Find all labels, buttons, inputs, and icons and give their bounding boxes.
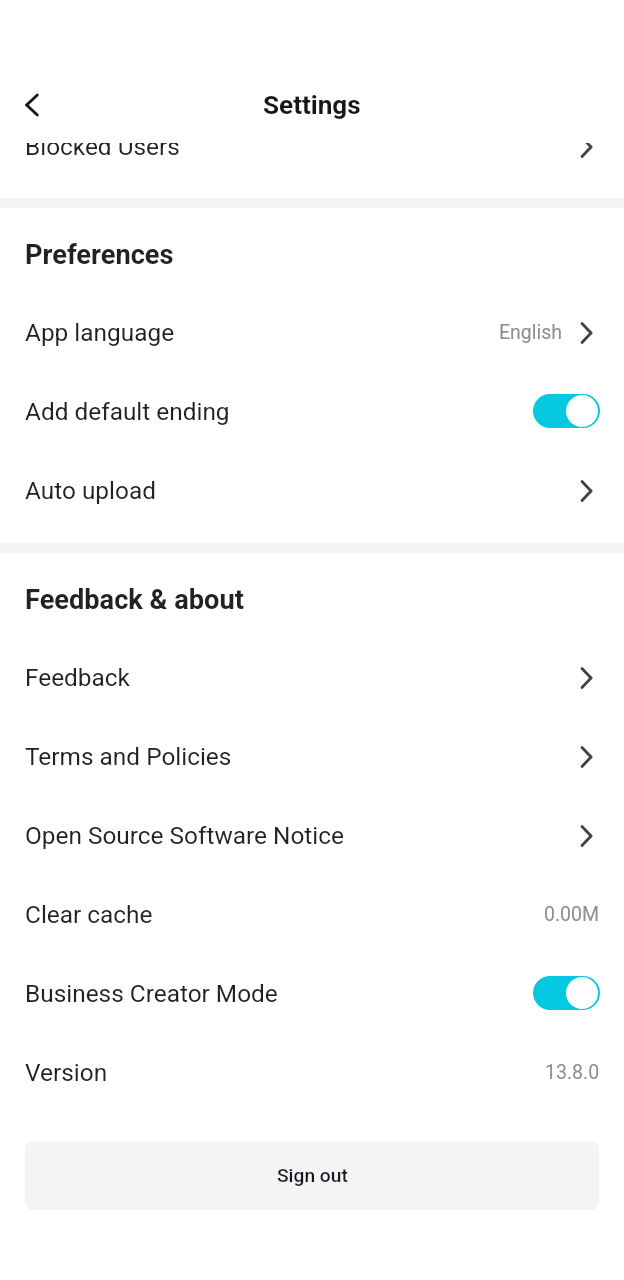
staticText: Settings [263,90,361,121]
button[interactable]: Toggle Add default ending [533,394,600,428]
staticText: Feedback [25,663,130,692]
button[interactable]: Auto upload [0,451,624,530]
staticText: Preferences [25,239,174,271]
staticText: Version [25,1058,108,1087]
button[interactable]: Back [10,83,53,126]
button[interactable]: App language [0,293,624,372]
button[interactable]: Blocked Users [0,107,624,186]
staticText: Terms and Policies [25,742,232,771]
button[interactable]: Clear cache [0,875,624,954]
staticText: Add default ending [25,397,230,426]
button[interactable]: Toggle Business Creator Mode [533,976,600,1010]
button[interactable]: Sign out [25,1141,599,1210]
staticText: Sign out [277,1164,348,1187]
button[interactable]: Business Creator Mode [0,954,624,1033]
staticText: Open Source Software Notice [25,821,344,850]
button[interactable]: Version [0,1033,624,1112]
staticText: Business Creator Mode [25,979,278,1008]
button[interactable]: Terms and Policies [0,717,624,796]
staticText: Clear cache [25,900,153,929]
staticText: Blocked Users [25,132,180,161]
button[interactable]: Open Source Software Notice [0,796,624,875]
staticText: Feedback & about [25,584,244,616]
staticText: Auto upload [25,476,156,505]
staticText: 0.00M [544,903,600,926]
staticText: 13.8.0 [545,1061,600,1084]
button[interactable]: Add default ending [0,372,624,451]
staticText: English [499,321,563,344]
button[interactable]: Feedback [0,638,624,717]
staticText: App language [25,318,175,347]
